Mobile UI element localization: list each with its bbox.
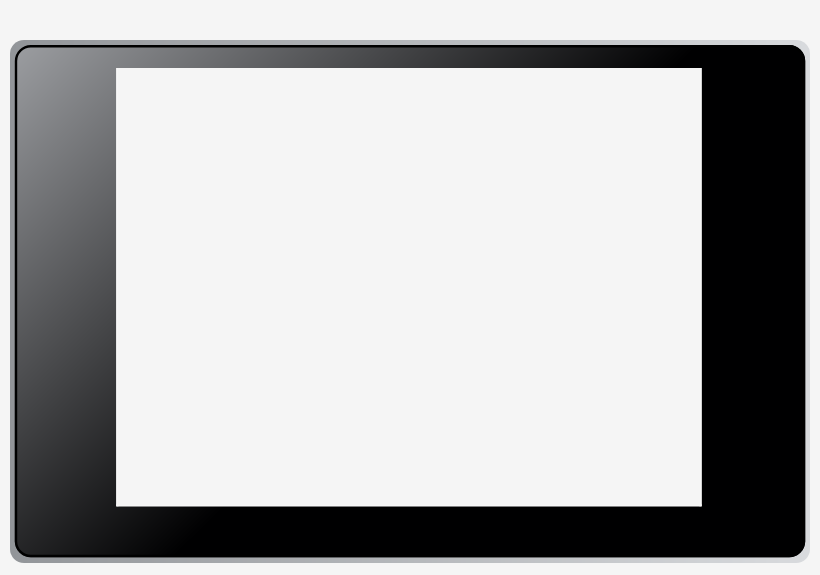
button[interactable]: Tablet device: [10, 40, 810, 563]
